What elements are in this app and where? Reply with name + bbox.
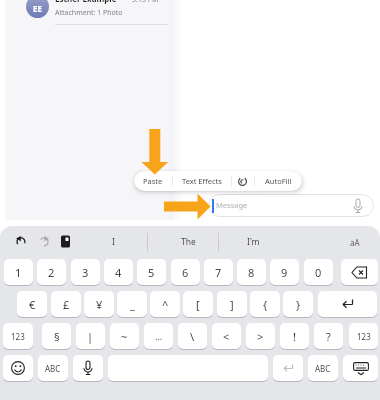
staticText: 7 [215,265,222,280]
staticText: ! [293,329,296,344]
button[interactable]: ... [144,323,173,349]
button[interactable] [318,291,377,317]
button[interactable]: The [148,230,218,254]
staticText: 5 [148,265,155,280]
button[interactable]: € [17,291,47,317]
button[interactable]: 9 [270,259,299,285]
button[interactable] [61,235,71,248]
button[interactable]: Paste [134,171,172,191]
staticText: > [257,329,264,344]
staticText: ^ [162,297,169,312]
button[interactable] [73,355,103,381]
button[interactable]: 5 [137,259,166,285]
staticText: } [296,297,301,312]
button[interactable]: 123 [3,323,33,349]
staticText: \ [190,329,195,344]
button[interactable]: [ [183,291,213,317]
button[interactable] [208,194,374,217]
staticText: I'm [247,236,260,248]
staticText: 5:15 PM [132,0,159,5]
button[interactable]: ABC [38,355,68,381]
button[interactable] [3,355,33,381]
button[interactable]: £ [51,291,81,317]
button[interactable]: EE [26,0,49,18]
button[interactable]: § [42,323,71,349]
button[interactable]: \ [178,323,207,349]
staticText: Paste [143,176,163,186]
button[interactable]: AutoFill [254,171,302,191]
staticText: 123 [357,331,371,342]
staticText: 3 [82,265,89,280]
button[interactable]: ] [217,291,247,317]
button[interactable] [231,171,254,191]
staticText: ¥ [96,297,103,312]
staticText: 4 [115,265,122,280]
button[interactable]: ! [280,323,309,349]
button[interactable]: } [283,291,313,317]
staticText: The [181,236,196,248]
button[interactable] [16,236,26,246]
staticText: AutoFill [265,176,292,186]
staticText: Attachment: 1 Photo [55,8,123,18]
staticText: ? [326,329,331,344]
button[interactable]: 0 [304,259,333,285]
button[interactable]: 123 [349,323,378,349]
button[interactable]: ^ [150,291,180,317]
staticText: { [263,297,268,312]
staticText: 6 [182,265,189,280]
staticText: Message [216,200,248,210]
staticText: EE [33,3,42,14]
staticText: < [223,329,230,344]
button[interactable]: Text Effects [172,171,231,191]
button[interactable]: I [80,230,146,254]
button[interactable]: 4 [104,259,133,285]
staticText: § [54,329,60,344]
button[interactable]: 2 [37,259,66,285]
button[interactable]: < [212,323,241,349]
staticText: £ [63,297,70,312]
button[interactable]: > [246,323,275,349]
button[interactable] [343,355,378,381]
staticText: _ [130,297,135,312]
button[interactable]: { [250,291,280,317]
staticText: 123 [11,331,25,342]
button[interactable]: 6 [171,259,200,285]
staticText: | [87,329,94,344]
button[interactable]: ~ [110,323,139,349]
staticText: ... [155,330,163,342]
staticText: 9 [281,265,288,280]
button[interactable]: | [76,323,105,349]
staticText: [ [196,297,200,312]
staticText: 0 [315,265,322,280]
button[interactable]: 8 [237,259,266,285]
button[interactable]: I'm [219,230,287,254]
staticText: aA [350,237,360,248]
button[interactable] [39,236,49,246]
button[interactable]: _ [117,291,147,317]
button[interactable]: 3 [71,259,100,285]
staticText: Text Effects [182,176,222,186]
staticText: ] [230,297,234,312]
staticText: 2 [48,265,55,280]
button[interactable]: 7 [204,259,233,285]
staticText: I [112,236,115,248]
staticText: ABC [315,363,331,374]
button[interactable]: ABC [308,355,338,381]
button[interactable]: ? [314,323,343,349]
button[interactable] [341,259,378,285]
staticText: € [29,297,36,312]
button[interactable] [273,355,303,381]
staticText: 8 [248,265,255,280]
staticText: ~ [121,329,128,344]
staticText: 1 [15,265,22,280]
button[interactable]: 1 [4,259,33,285]
staticText: Esther Example [55,0,117,4]
staticText: ABC [45,363,61,374]
button[interactable]: ¥ [84,291,114,317]
